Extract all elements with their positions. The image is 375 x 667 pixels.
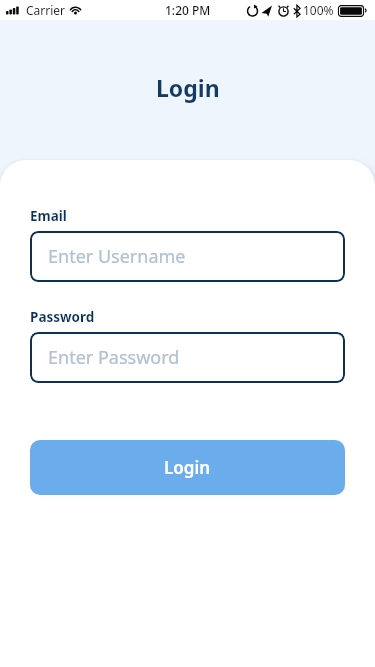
staticText: Carrier	[26, 2, 66, 18]
button[interactable]: Enter Password	[30, 332, 345, 383]
staticText: 100%	[303, 2, 334, 18]
staticText: Enter Username	[48, 244, 186, 269]
button[interactable]: Login	[30, 440, 345, 495]
staticText: Email	[30, 207, 67, 225]
staticText: Enter Password	[48, 345, 180, 370]
button[interactable]: Enter Username	[30, 231, 345, 282]
staticText: Login	[164, 456, 211, 479]
staticText: 1:20 PM	[165, 2, 211, 18]
staticText: Password	[30, 308, 95, 326]
staticText: Login	[156, 72, 220, 103]
